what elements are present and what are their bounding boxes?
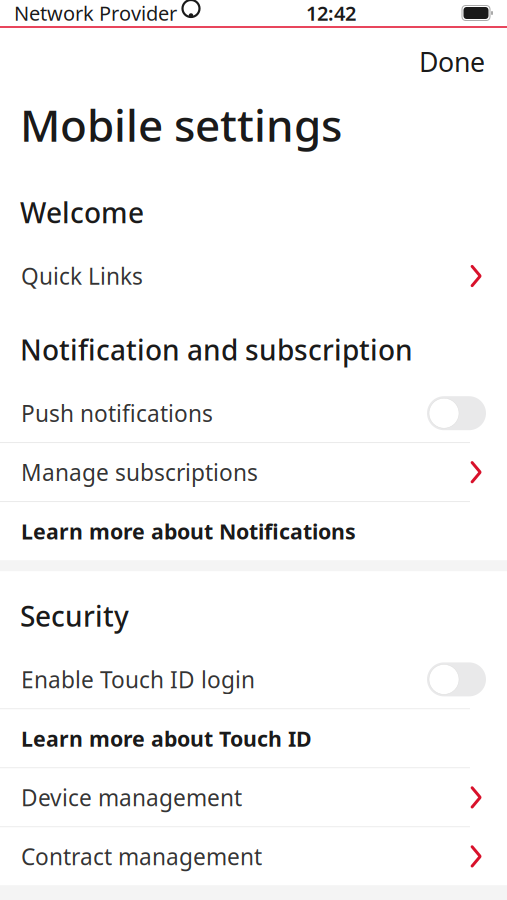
button[interactable]: Manage subscriptions [0,443,507,501]
button[interactable]: Learn more about Notifications [0,502,507,560]
button[interactable]: Quick Links [0,247,507,305]
staticText: Network Provider [14,0,177,26]
button[interactable]: Enable Touch ID login [0,650,507,708]
button[interactable]: Learn more about Touch ID [0,709,507,767]
staticText: 12:42 [306,0,356,26]
button[interactable]: Done [403,36,501,87]
staticText: Mobile settings [20,95,342,154]
staticText: Learn more about Notifications [21,517,356,545]
staticText: Welcome [20,194,144,231]
staticText: Notification and subscription [20,331,413,368]
staticText: Enable Touch ID login [21,664,255,694]
staticText: Done [419,44,485,79]
staticText: Learn more about Touch ID [21,724,312,752]
staticText [177,0,182,26]
button[interactable]: Device management [0,768,507,826]
staticText: Device management [21,782,242,812]
button[interactable]: Push notifications [0,384,507,442]
staticText: Push notifications [21,398,213,428]
staticText: Manage subscriptions [21,457,258,487]
staticText: Contract management [21,841,262,871]
staticText: Quick Links [21,261,143,291]
staticText: Security [20,597,129,634]
button[interactable]: Contract management [0,827,507,885]
